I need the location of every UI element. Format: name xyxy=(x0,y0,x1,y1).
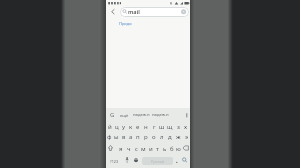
button[interactable]: о xyxy=(150,132,158,141)
button[interactable]: д xyxy=(166,132,174,141)
staticText: г xyxy=(153,123,156,131)
staticText: и xyxy=(149,145,153,153)
button[interactable]: Продо xyxy=(119,20,139,27)
staticText: м xyxy=(141,145,146,153)
button[interactable]: ш xyxy=(158,122,166,131)
staticText: ц xyxy=(115,123,119,131)
button[interactable]: я xyxy=(117,144,125,153)
button[interactable]: щ xyxy=(166,122,174,131)
button[interactable]: в xyxy=(120,132,127,141)
button[interactable]: ещё xyxy=(119,112,129,119)
button[interactable]: и xyxy=(147,144,154,153)
staticText: ш xyxy=(159,123,165,131)
button[interactable] xyxy=(108,7,118,17)
staticText: Продо xyxy=(119,21,132,26)
staticText: ещё xyxy=(120,113,129,119)
button[interactable]: е xyxy=(134,122,142,131)
staticText: с xyxy=(135,145,138,153)
button[interactable]: ж xyxy=(174,132,182,141)
staticText: з xyxy=(177,123,180,131)
staticText: ч xyxy=(127,145,131,153)
button[interactable]: с xyxy=(133,144,140,153)
button[interactable]: а xyxy=(127,132,134,141)
button[interactable]: л xyxy=(158,132,166,141)
staticText: G xyxy=(110,111,115,119)
button[interactable]: ы xyxy=(113,132,120,141)
staticText: ж xyxy=(176,133,181,141)
button[interactable]: т xyxy=(154,144,161,153)
staticText: о xyxy=(152,133,156,141)
staticText: ь xyxy=(163,145,167,153)
staticText: mail xyxy=(128,8,140,16)
button[interactable]: к xyxy=(127,122,134,131)
staticText: ы xyxy=(114,133,119,141)
staticText: щ xyxy=(167,123,173,131)
staticText: ?123 xyxy=(110,159,119,164)
button[interactable]: з xyxy=(174,122,182,131)
staticText: ф xyxy=(107,133,112,141)
staticText: н xyxy=(144,123,148,131)
button[interactable]: ц xyxy=(113,122,120,131)
staticText: е xyxy=(136,123,140,131)
staticText: п xyxy=(136,133,140,141)
button[interactable]: ф xyxy=(106,132,113,141)
staticText: р xyxy=(144,133,148,141)
staticText: надеж.ного xyxy=(152,112,169,119)
button[interactable]: ю xyxy=(175,144,182,153)
button[interactable]: п xyxy=(134,132,142,141)
button[interactable]: б xyxy=(168,144,175,153)
button[interactable]: р xyxy=(142,132,150,141)
button[interactable] xyxy=(120,7,189,17)
button[interactable]: ь xyxy=(161,144,168,153)
button[interactable]: н xyxy=(142,122,150,131)
button[interactable]: ?123 xyxy=(108,157,120,165)
staticText: ю xyxy=(176,145,181,153)
staticText: б xyxy=(170,145,174,153)
staticText: Русский xyxy=(151,159,164,164)
button[interactable]: у xyxy=(120,122,127,131)
staticText: л xyxy=(160,133,164,141)
staticText: в xyxy=(122,133,126,141)
staticText: й xyxy=(108,123,112,131)
staticText: т xyxy=(156,145,159,153)
button[interactable]: Русский xyxy=(142,157,173,165)
button[interactable]: G xyxy=(108,111,116,119)
staticText: к xyxy=(129,123,133,131)
staticText: а xyxy=(129,133,133,141)
button[interactable]: х xyxy=(182,122,190,131)
button[interactable]: й xyxy=(106,122,113,131)
button[interactable]: ч xyxy=(125,144,133,153)
button[interactable]: э xyxy=(182,132,190,141)
staticText: х xyxy=(184,123,188,131)
staticText: надеж.ный xyxy=(133,112,150,119)
button[interactable]: г xyxy=(150,122,158,131)
button[interactable]: надеж.ного xyxy=(152,112,169,119)
button[interactable]: м xyxy=(140,144,147,153)
staticText: э xyxy=(185,133,188,141)
staticText: у xyxy=(122,123,126,131)
button[interactable]: надеж.ный xyxy=(133,112,150,119)
staticText: д xyxy=(168,133,172,141)
staticText: я xyxy=(119,145,123,153)
